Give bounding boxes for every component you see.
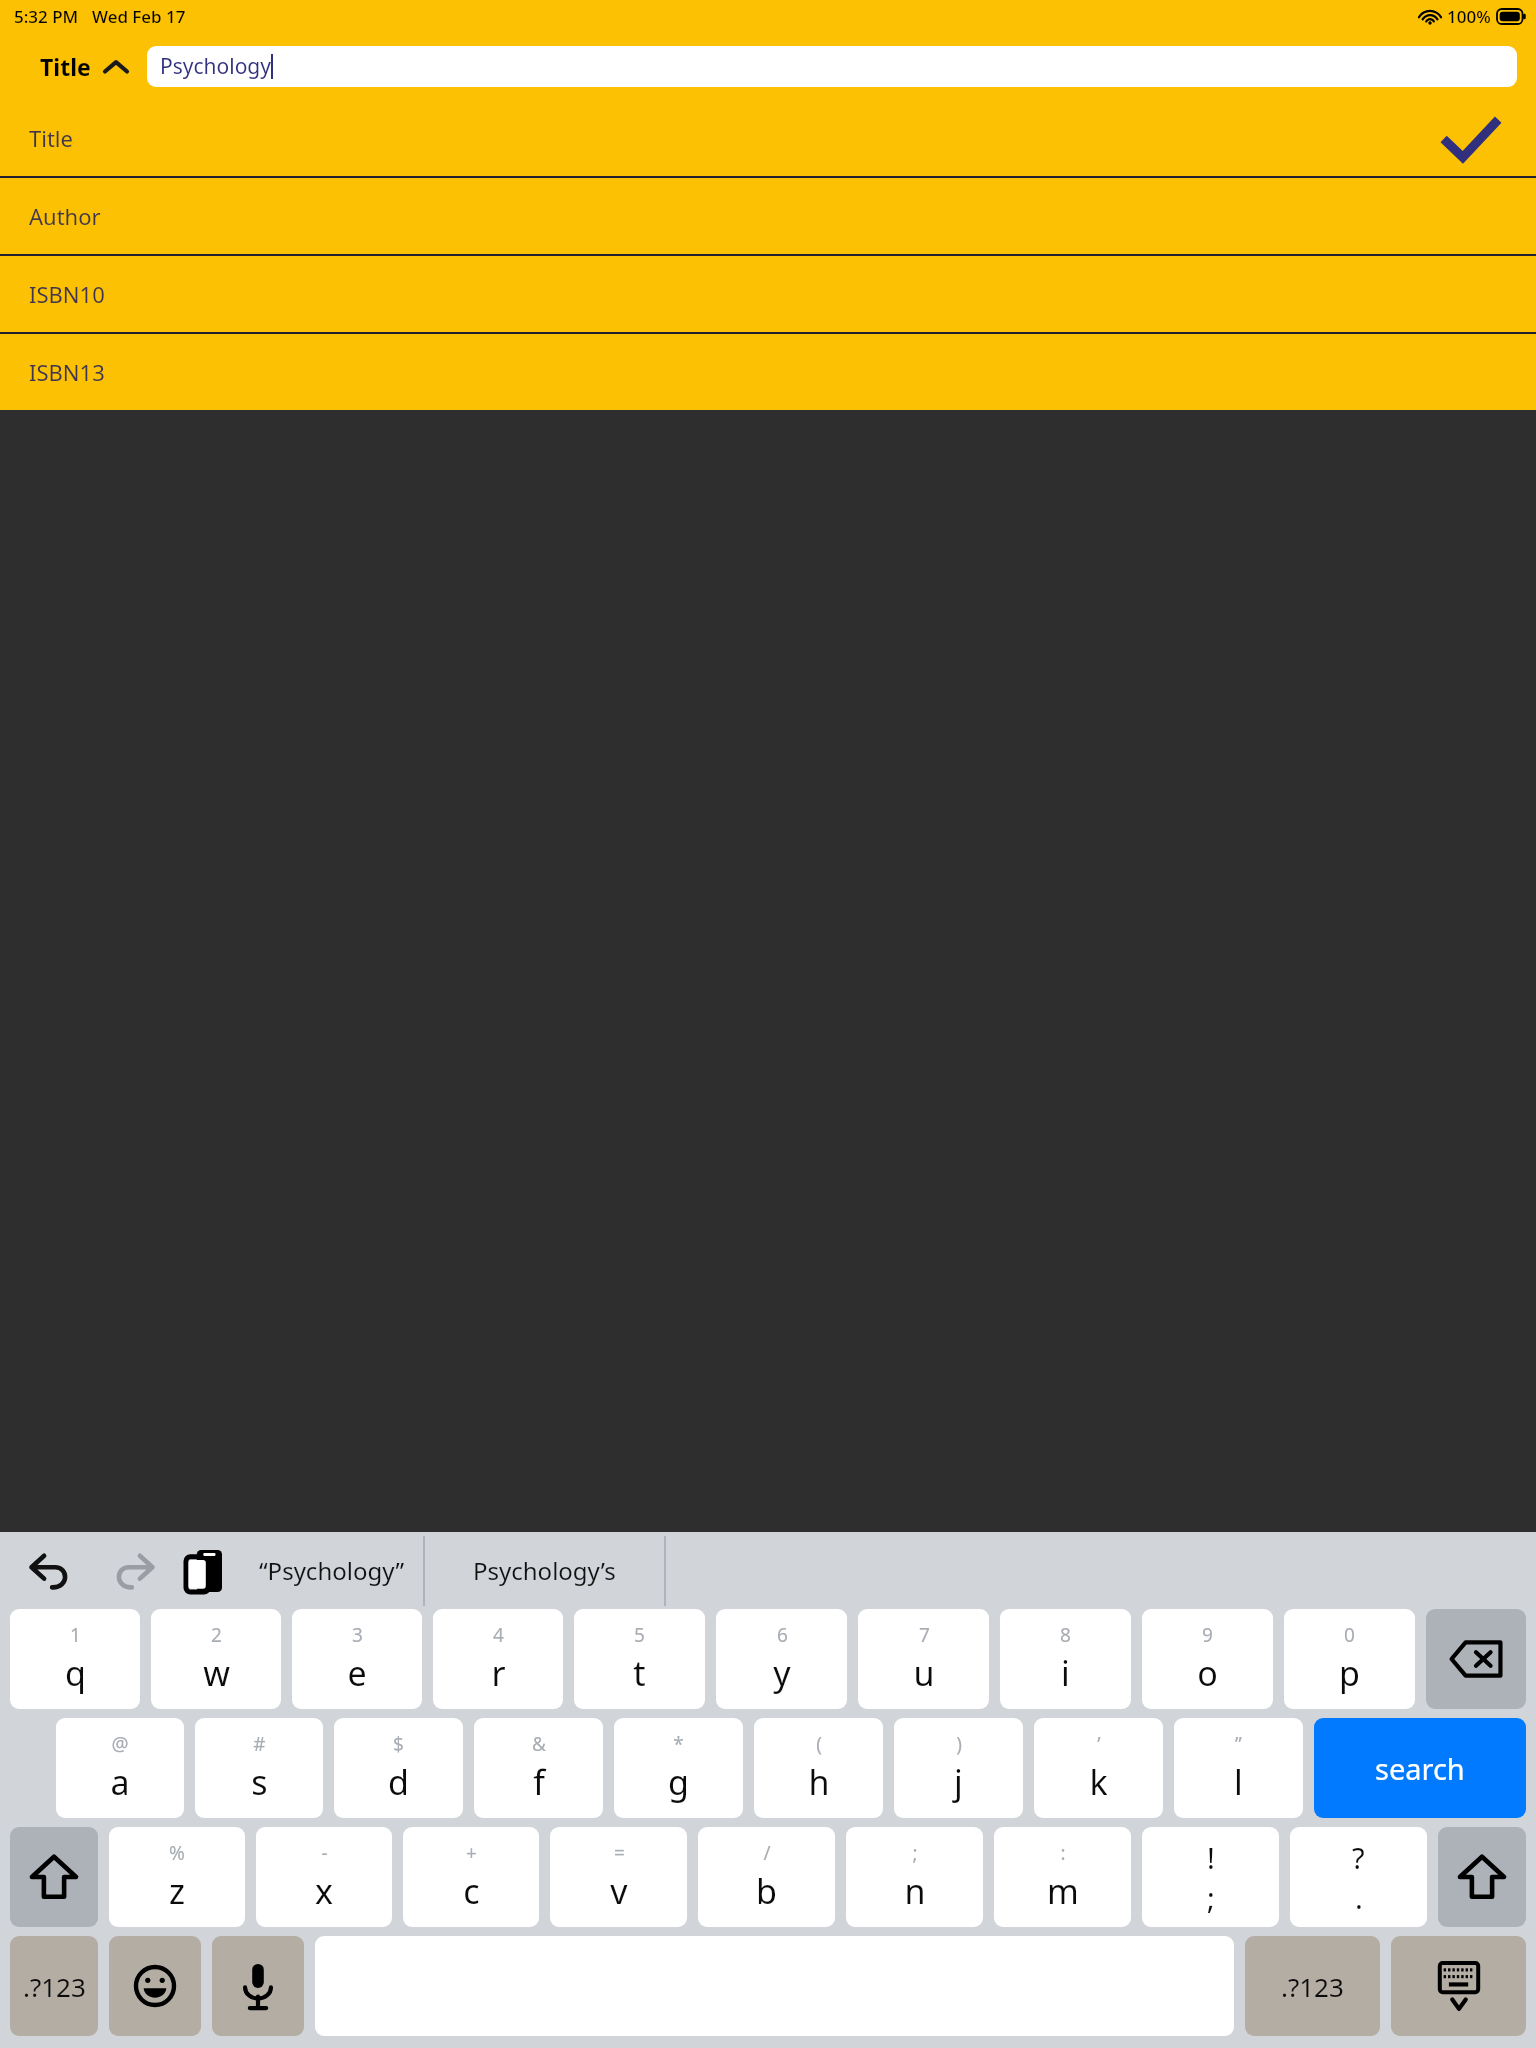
- button[interactable]: .?123: [1245, 1936, 1380, 2036]
- staticText: i: [1061, 1650, 1070, 1696]
- staticText: Psychology’s: [473, 1554, 616, 1587]
- button[interactable]: (: [754, 1718, 883, 1818]
- staticText: “Psychology”: [259, 1554, 405, 1587]
- staticText: ;: [912, 1840, 918, 1866]
- staticText: ;: [1207, 1878, 1215, 1917]
- button[interactable]: ”: [1174, 1718, 1303, 1818]
- button[interactable]: #: [195, 1718, 323, 1818]
- button[interactable]: Psychology’s: [425, 1532, 664, 1609]
- staticText: ’: [1097, 1731, 1101, 1757]
- button[interactable]: 8: [1000, 1609, 1131, 1709]
- staticText: /: [763, 1840, 771, 1866]
- staticText: .?123: [23, 1969, 86, 2004]
- staticText: l: [1234, 1759, 1243, 1805]
- staticText: v: [610, 1868, 628, 1914]
- button[interactable]: -: [256, 1827, 392, 1927]
- button[interactable]: Author: [0, 178, 1536, 254]
- button[interactable]: 1: [10, 1609, 140, 1709]
- staticText: k: [1089, 1759, 1108, 1805]
- button[interactable]: 3: [292, 1609, 422, 1709]
- button[interactable]: ISBN13: [0, 334, 1536, 410]
- staticText: o: [1197, 1650, 1218, 1696]
- staticText: 4: [493, 1622, 504, 1648]
- button[interactable]: =: [550, 1827, 687, 1927]
- staticText: n: [904, 1868, 926, 1914]
- staticText: ?: [1352, 1838, 1365, 1877]
- button[interactable]: Undo: [0, 1532, 100, 1609]
- button[interactable]: ’: [1034, 1718, 1163, 1818]
- button[interactable]: 4: [433, 1609, 563, 1709]
- staticText: =: [614, 1840, 625, 1866]
- staticText: 100%: [1447, 5, 1491, 28]
- staticText: 9: [1202, 1622, 1213, 1648]
- staticText: p: [1339, 1650, 1360, 1696]
- button[interactable]: Shift: [10, 1827, 98, 1927]
- button[interactable]: Title: [40, 51, 127, 82]
- staticText: f: [533, 1759, 545, 1805]
- button[interactable]: 2: [151, 1609, 281, 1709]
- button[interactable]: !: [1142, 1827, 1279, 1927]
- staticText: 0: [1344, 1622, 1355, 1648]
- staticText: r: [491, 1650, 506, 1696]
- button[interactable]: .?123: [10, 1936, 98, 2036]
- staticText: %: [169, 1840, 185, 1866]
- button[interactable]: +: [403, 1827, 539, 1927]
- button[interactable]: :: [994, 1827, 1131, 1927]
- button[interactable]: /: [698, 1827, 835, 1927]
- staticText: 1: [70, 1622, 81, 1648]
- button[interactable]: ?: [1290, 1827, 1427, 1927]
- staticText: Author: [29, 201, 101, 231]
- button[interactable]: search: [1314, 1718, 1526, 1818]
- button[interactable]: Paste: [168, 1532, 240, 1609]
- staticText: Wed Feb 17: [92, 5, 186, 28]
- button[interactable]: “Psychology”: [240, 1532, 423, 1609]
- button[interactable]: Emoji: [109, 1936, 201, 2036]
- button[interactable]: Redo: [100, 1532, 168, 1609]
- staticText: (: [816, 1731, 822, 1757]
- button[interactable]: Backspace: [1426, 1609, 1526, 1709]
- staticText: s: [251, 1759, 268, 1805]
- staticText: 6: [777, 1622, 788, 1648]
- button[interactable]: Psychology: [147, 46, 1517, 87]
- staticText: +: [466, 1840, 477, 1866]
- button[interactable]: @: [56, 1718, 184, 1818]
- staticText: #: [253, 1731, 266, 1757]
- other: Confirm: [1440, 115, 1500, 161]
- staticText: Psychology: [160, 52, 271, 81]
- button[interactable]: $: [334, 1718, 463, 1818]
- staticText: 8: [1060, 1622, 1071, 1648]
- button[interactable]: 0: [1284, 1609, 1415, 1709]
- button[interactable]: ): [894, 1718, 1023, 1818]
- staticText: search: [1375, 1749, 1465, 1788]
- staticText: h: [808, 1759, 830, 1805]
- staticText: e: [347, 1650, 367, 1696]
- staticText: w: [203, 1650, 230, 1696]
- button[interactable]: Shift: [1438, 1827, 1526, 1927]
- staticText: :: [1060, 1840, 1066, 1866]
- button[interactable]: 5: [574, 1609, 705, 1709]
- staticText: 5:32 PM: [14, 5, 79, 28]
- staticText: *: [673, 1731, 684, 1757]
- button[interactable]: &: [474, 1718, 603, 1818]
- button[interactable]: 6: [716, 1609, 847, 1709]
- button[interactable]: %: [109, 1827, 245, 1927]
- staticText: x: [315, 1868, 333, 1914]
- staticText: c: [463, 1868, 480, 1914]
- button[interactable]: 7: [858, 1609, 989, 1709]
- staticText: u: [913, 1650, 935, 1696]
- staticText: q: [65, 1650, 86, 1696]
- button[interactable]: 9: [1142, 1609, 1273, 1709]
- button[interactable]: Title: [0, 100, 1536, 176]
- staticText: t: [633, 1650, 646, 1696]
- staticText: $: [393, 1731, 404, 1757]
- button[interactable]: *: [614, 1718, 743, 1818]
- staticText: ISBN10: [29, 279, 105, 309]
- staticText: a: [110, 1759, 130, 1805]
- button[interactable]: ;: [846, 1827, 983, 1927]
- button[interactable]: Hide keyboard: [1391, 1936, 1526, 2036]
- button[interactable]: Dictation: [212, 1936, 304, 2036]
- staticText: y: [773, 1650, 791, 1696]
- button[interactable]: ISBN10: [0, 256, 1536, 332]
- staticText: !: [1207, 1838, 1215, 1877]
